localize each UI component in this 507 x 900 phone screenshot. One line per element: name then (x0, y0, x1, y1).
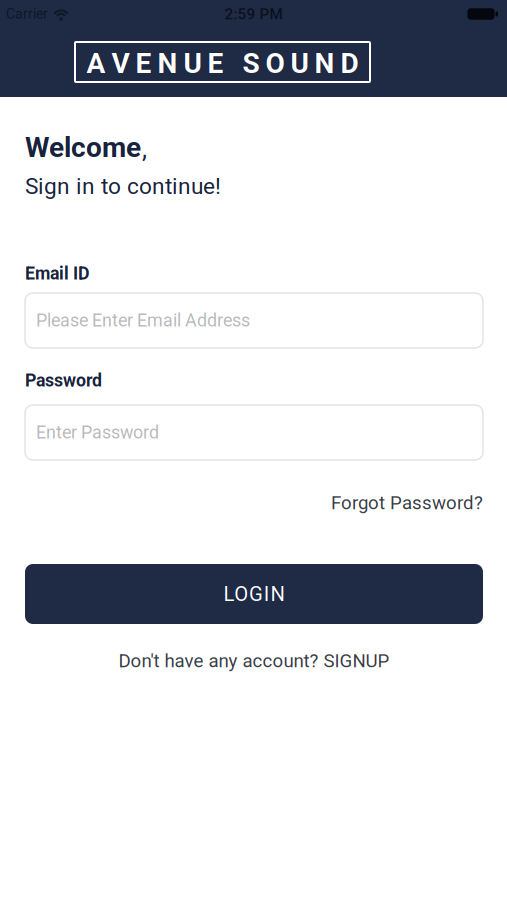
button[interactable]: LOGIN (25, 564, 483, 624)
button[interactable]: Please Enter Email Address (25, 293, 483, 348)
button[interactable]: Forgot Password? (331, 492, 483, 514)
staticText: Forgot Password? (331, 492, 483, 514)
staticText: 2:59 PM (224, 5, 282, 23)
staticText: Password (25, 370, 102, 391)
staticText: Don't have any account? SIGNUP (118, 650, 389, 672)
staticText: Please Enter Email Address (36, 310, 250, 331)
staticText: Email ID (25, 263, 90, 284)
button[interactable]: Enter Password (25, 405, 483, 460)
staticText: A V E N U E S O U N D (86, 47, 358, 80)
staticText: Carrier (6, 6, 48, 22)
staticText: Enter Password (36, 422, 159, 443)
staticText: Sign in to continue! (25, 173, 221, 200)
staticText: LOGIN (223, 582, 284, 606)
staticText: Welcome (25, 131, 141, 164)
staticText: , (142, 134, 147, 164)
button[interactable]: Don't have any account? SIGNUP (118, 650, 389, 672)
